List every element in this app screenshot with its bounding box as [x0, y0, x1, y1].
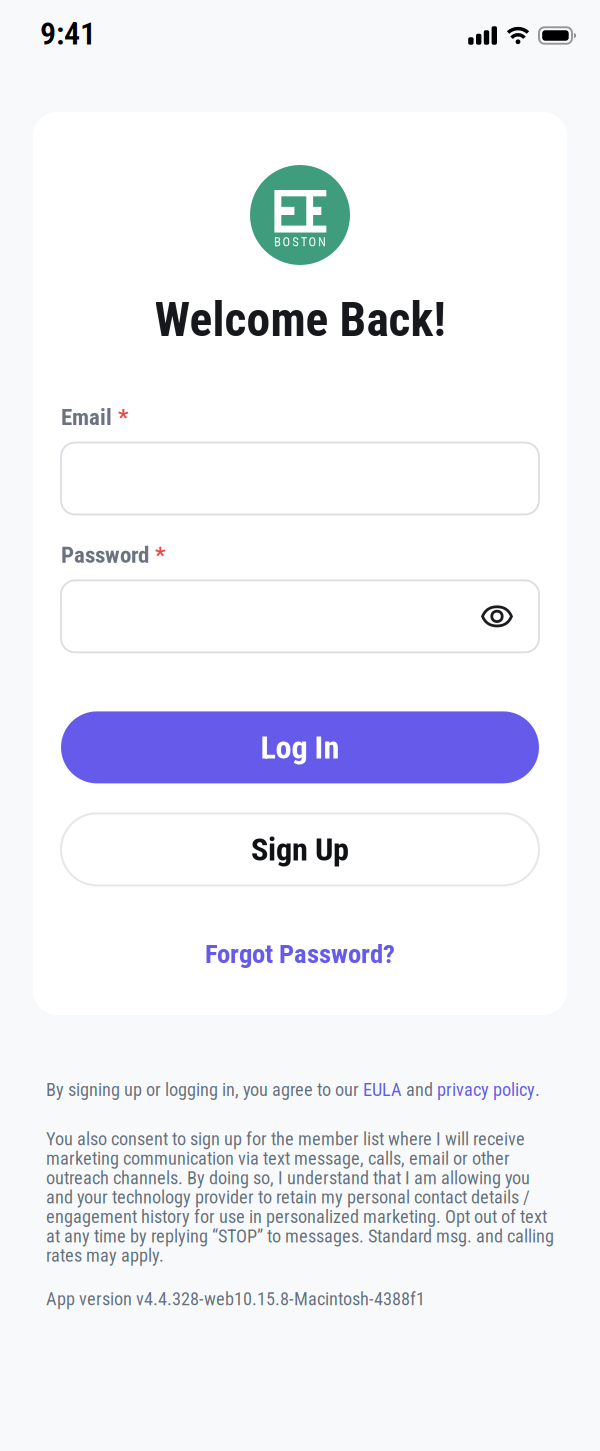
button[interactable]: Log In [61, 711, 539, 783]
staticText: 9:41 [40, 15, 96, 52]
button[interactable]: Sign Up [61, 813, 539, 885]
staticText: * [118, 404, 128, 430]
staticText: outreach channels. By doing so, I unders… [46, 1167, 530, 1189]
staticText: Password [61, 541, 149, 568]
staticText: marketing communication via text message… [46, 1148, 510, 1169]
staticText: Forgot Password? [205, 938, 395, 970]
button[interactable]: Forgot Password? [205, 938, 395, 970]
button[interactable] [61, 580, 539, 652]
staticText: and your technology provider to retain m… [46, 1187, 530, 1208]
staticText: at any time by replying “STOP” to messag… [46, 1225, 554, 1247]
staticText: and [402, 1079, 437, 1100]
staticText: * [155, 541, 165, 568]
staticText: engagement history for use in personaliz… [46, 1206, 547, 1227]
staticText: Sign Up [251, 830, 349, 868]
button[interactable]: EULA [363, 1079, 402, 1100]
staticText: You also consent to sign up for the memb… [46, 1128, 525, 1150]
staticText: By signing up or logging in, you agree t… [46, 1079, 363, 1100]
button[interactable]: privacy policy [437, 1079, 535, 1100]
staticText: App version v4.4.328-web10.15.8-Macintos… [46, 1288, 425, 1310]
staticText: BOSTON [274, 235, 326, 249]
staticText: Email [61, 404, 112, 430]
staticText: Log In [260, 728, 339, 766]
staticText: Welcome Back! [154, 292, 445, 348]
staticText: EULA [363, 1079, 402, 1100]
staticText: . [535, 1079, 540, 1100]
button[interactable] [481, 605, 513, 627]
staticText: privacy policy [437, 1079, 535, 1100]
button[interactable] [61, 442, 539, 514]
staticText: rates may apply. [46, 1245, 164, 1266]
